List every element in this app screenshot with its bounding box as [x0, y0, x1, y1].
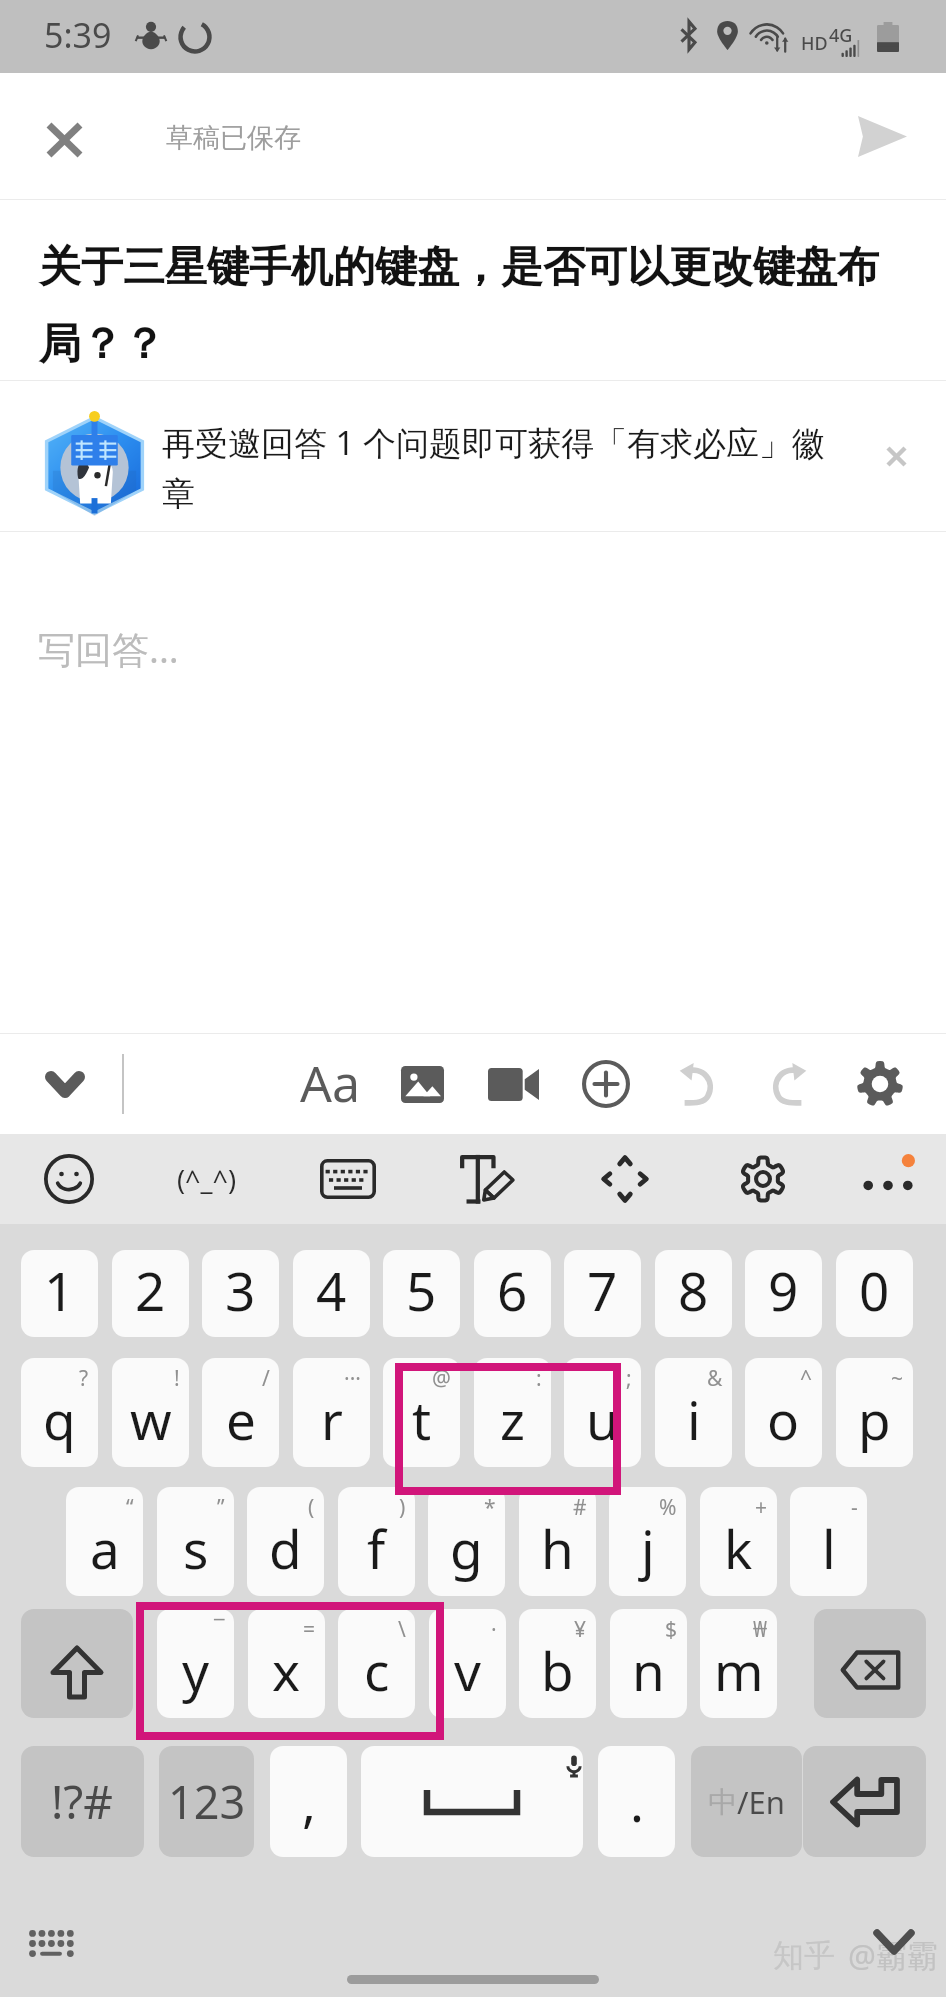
staticText: ₩ — [753, 1615, 768, 1644]
button[interactable]: Send — [837, 91, 927, 181]
staticText: 6 — [497, 1254, 528, 1326]
staticText: . — [630, 1766, 644, 1837]
button[interactable]: 8 — [655, 1250, 732, 1337]
button[interactable]: (^_^) — [162, 1135, 252, 1223]
staticText: ¥ — [574, 1615, 587, 1644]
button[interactable]: ” — [157, 1487, 234, 1596]
button[interactable]: Move — [580, 1135, 670, 1223]
button[interactable]: ₩ — [700, 1609, 777, 1718]
button[interactable]: % — [609, 1487, 686, 1596]
staticText: o — [767, 1383, 800, 1455]
button[interactable]: \ — [338, 1609, 415, 1718]
button[interactable]: Shift — [21, 1609, 133, 1718]
button[interactable]: Settings — [835, 1039, 925, 1129]
button[interactable]: # — [519, 1487, 596, 1596]
button[interactable]: Insert video — [468, 1039, 558, 1129]
staticText: + — [755, 1493, 768, 1522]
staticText: 9 — [768, 1254, 799, 1326]
button[interactable]: Backspace — [814, 1609, 926, 1718]
button[interactable]: 3 — [202, 1250, 279, 1337]
staticText: j — [641, 1512, 655, 1584]
button[interactable]: Redo — [744, 1039, 834, 1129]
staticText: h — [541, 1512, 574, 1584]
staticText: 2 — [135, 1254, 166, 1326]
staticText: p — [858, 1383, 891, 1455]
button[interactable]: ! — [112, 1358, 189, 1467]
button[interactable]: Add — [561, 1039, 651, 1129]
button[interactable]: ; — [564, 1358, 641, 1467]
button[interactable]: !?# — [21, 1746, 144, 1857]
staticText: ^ — [800, 1364, 813, 1393]
button[interactable]: Handwriting — [442, 1135, 532, 1223]
button[interactable]: ) — [338, 1487, 415, 1596]
button[interactable]: : — [474, 1358, 551, 1467]
button[interactable]: 7 — [564, 1250, 641, 1337]
button[interactable]: 1 — [21, 1250, 98, 1337]
button[interactable]: 0 — [836, 1250, 913, 1337]
staticText: HD — [801, 31, 828, 56]
staticText: 再受邀回答 1 个问题即可获得「有求必应」徽章 — [162, 420, 841, 514]
button[interactable]: Aa — [285, 1039, 375, 1129]
button[interactable]: Emoji — [24, 1135, 114, 1223]
button[interactable]: = — [248, 1609, 325, 1718]
button[interactable]: Close — [19, 91, 109, 181]
button[interactable]: Keyboard settings — [718, 1135, 808, 1223]
button[interactable]: Dismiss — [851, 411, 941, 501]
staticText: n — [632, 1634, 665, 1706]
button[interactable]: ··· — [293, 1358, 370, 1467]
staticText: 草稿已保存 — [166, 121, 301, 155]
button[interactable]: @ — [383, 1358, 460, 1467]
staticText: ! — [174, 1364, 180, 1393]
staticText: e — [226, 1383, 256, 1455]
staticText: w — [130, 1383, 172, 1455]
button[interactable]: / — [202, 1358, 279, 1467]
button[interactable]: & — [655, 1358, 732, 1467]
button[interactable]: Insert image — [377, 1039, 467, 1129]
button[interactable]: $ — [610, 1609, 687, 1718]
button[interactable]: 2 — [112, 1250, 189, 1337]
staticText: 8 — [678, 1254, 709, 1326]
button[interactable]: ^ — [745, 1358, 822, 1467]
button[interactable]: Undo — [651, 1039, 741, 1129]
staticText: - — [851, 1493, 858, 1522]
staticText: 5 — [406, 1254, 437, 1326]
staticText: x — [272, 1634, 301, 1706]
staticText: l — [822, 1512, 836, 1584]
button[interactable]: Collapse — [20, 1039, 110, 1129]
button[interactable]: ¯ — [157, 1609, 234, 1718]
button[interactable]: More — [843, 1135, 933, 1223]
staticText: m — [714, 1634, 764, 1706]
button[interactable]: “ — [66, 1487, 143, 1596]
button[interactable]: ¥ — [519, 1609, 596, 1718]
button[interactable]: 6 — [474, 1250, 551, 1337]
button[interactable]: Space — [361, 1746, 583, 1857]
button[interactable]: 123 — [159, 1746, 254, 1857]
staticText: 3 — [225, 1254, 256, 1326]
staticText: u — [586, 1383, 619, 1455]
staticText: /En — [737, 1781, 785, 1823]
staticText: = — [303, 1615, 316, 1644]
button[interactable]: 9 — [745, 1250, 822, 1337]
button[interactable]: · — [429, 1609, 506, 1718]
button[interactable]: * — [428, 1487, 505, 1596]
button[interactable]: Language — [691, 1746, 802, 1857]
staticText: a — [90, 1512, 120, 1584]
staticText: 0 — [859, 1254, 890, 1326]
staticText: @ — [432, 1364, 451, 1393]
staticText: # — [573, 1493, 587, 1522]
button[interactable]: ? — [21, 1358, 98, 1467]
staticText: q — [43, 1383, 76, 1455]
button[interactable]: 4 — [293, 1250, 370, 1337]
button[interactable]: + — [700, 1487, 777, 1596]
staticText: / — [262, 1364, 270, 1393]
button[interactable]: Keyboard — [303, 1135, 393, 1223]
button[interactable]: , — [270, 1746, 347, 1857]
button[interactable]: . — [598, 1746, 675, 1857]
staticText: ) — [399, 1493, 406, 1522]
button[interactable]: ~ — [836, 1358, 913, 1467]
staticText: k — [724, 1512, 753, 1584]
button[interactable]: 5 — [383, 1250, 460, 1337]
button[interactable]: Enter — [803, 1746, 926, 1857]
button[interactable]: ( — [247, 1487, 324, 1596]
button[interactable]: - — [790, 1487, 867, 1596]
